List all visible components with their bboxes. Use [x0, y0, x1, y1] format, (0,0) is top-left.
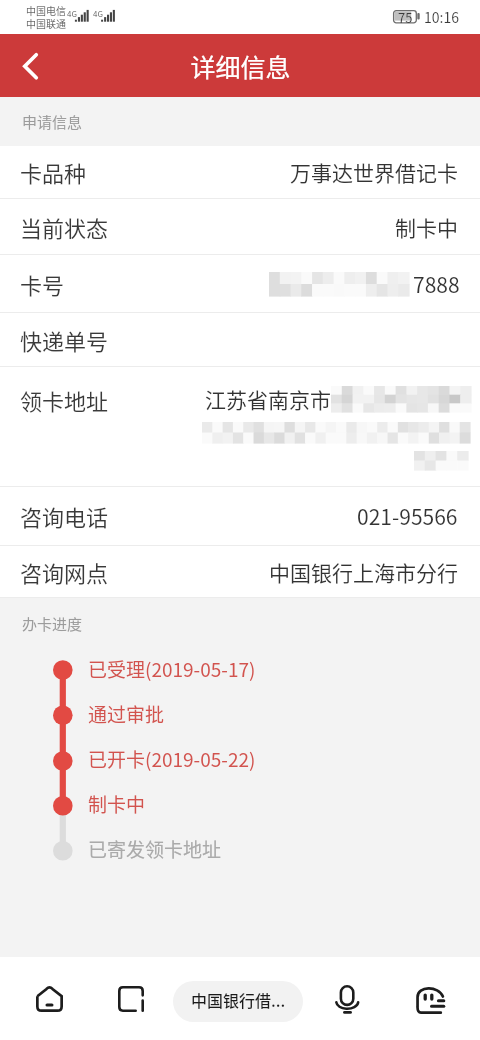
staticText: 通过审批 [88, 700, 165, 728]
staticText: 7888 [413, 269, 460, 299]
staticText: 咨询电话 [20, 500, 109, 532]
staticText: 75 [398, 8, 413, 27]
button[interactable]: 卡号 [0, 255, 480, 312]
staticText: 申请信息 [22, 111, 83, 133]
staticText: 4G [67, 8, 77, 20]
staticText: 已受理(2019-05-17) [88, 655, 256, 683]
staticText: 江苏省南京市 [205, 384, 331, 414]
staticText: 中国银行上海市分行 [269, 557, 458, 587]
staticText: 中国联通 [26, 16, 66, 30]
button[interactable]: 咨询电话 [0, 487, 480, 545]
staticText: 制卡中 [88, 790, 146, 818]
button[interactable]: 咨询网点 [0, 546, 480, 597]
staticText: 万事达世界借记卡 [290, 157, 458, 187]
staticText: 卡品种 [20, 156, 87, 188]
staticText: 领卡地址 [20, 384, 109, 416]
button[interactable]: 中国银行借... [173, 981, 303, 1022]
staticText: 10:16 [424, 7, 459, 27]
button[interactable]: Home [24, 967, 76, 1015]
staticText: 中国电信 [26, 3, 66, 17]
button[interactable]: 当前状态 [0, 199, 480, 254]
staticText: 办卡进度 [22, 613, 83, 635]
staticText: 详细信息 [190, 48, 291, 84]
staticText: 快递单号 [20, 324, 109, 356]
button[interactable]: Back [0, 34, 56, 97]
staticText: 已寄发领卡地址 [88, 835, 222, 863]
button[interactable]: Recents [105, 967, 157, 1015]
staticText: 当前状态 [20, 211, 109, 243]
staticText: 咨询网点 [20, 556, 109, 588]
staticText: 制卡中 [395, 212, 458, 242]
button[interactable]: 领卡地址 [0, 367, 480, 486]
staticText: 中国银行借... [191, 988, 286, 1011]
button[interactable]: Assistant [404, 967, 456, 1015]
staticText: 已开卡(2019-05-22) [88, 745, 256, 773]
button[interactable]: 快递单号 [0, 313, 480, 366]
staticText: 4G [93, 8, 103, 20]
staticText: 021-95566 [357, 501, 458, 531]
button[interactable]: 卡品种 [0, 146, 480, 198]
button[interactable]: Voice search [322, 967, 374, 1015]
staticText: 卡号 [20, 268, 65, 300]
